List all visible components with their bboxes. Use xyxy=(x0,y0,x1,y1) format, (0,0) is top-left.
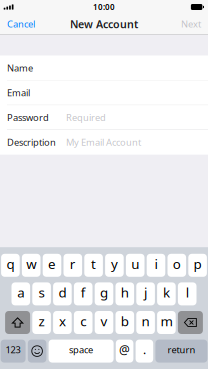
button[interactable]: m xyxy=(157,311,176,334)
button[interactable]: k xyxy=(157,282,176,305)
staticText: q xyxy=(6,255,14,273)
button[interactable]: e xyxy=(43,254,61,277)
button[interactable]: Shift xyxy=(5,311,30,334)
staticText: g xyxy=(100,283,108,301)
button[interactable]: c xyxy=(74,311,92,334)
staticText: Name xyxy=(7,62,33,74)
button[interactable]: s xyxy=(32,282,51,305)
button[interactable]: n xyxy=(136,311,155,334)
staticText: f xyxy=(81,283,86,301)
button[interactable]: r xyxy=(63,254,82,277)
button[interactable]: i xyxy=(147,254,165,277)
button[interactable]: Next xyxy=(177,14,208,34)
staticText: a xyxy=(17,283,24,301)
staticText: t xyxy=(91,255,96,273)
button[interactable]: 123 xyxy=(1,340,26,363)
button[interactable]: w xyxy=(22,254,40,277)
button[interactable]: @ xyxy=(116,340,133,363)
staticText: y xyxy=(111,255,118,273)
button[interactable]: o xyxy=(167,254,186,277)
staticText: l xyxy=(186,283,189,301)
staticText: r xyxy=(70,255,76,273)
staticText: . xyxy=(143,342,146,357)
staticText: 123 xyxy=(6,343,21,356)
button[interactable]: j xyxy=(136,282,155,305)
button[interactable]: q xyxy=(1,254,20,277)
staticText: u xyxy=(131,255,139,273)
button[interactable]: g xyxy=(95,282,113,305)
staticText: d xyxy=(58,283,66,301)
staticText: s xyxy=(39,283,45,301)
staticText: space xyxy=(69,343,93,356)
staticText: x xyxy=(59,312,66,330)
button[interactable]: x xyxy=(53,311,72,334)
button[interactable]: Delete xyxy=(178,311,203,334)
staticText: i xyxy=(154,255,157,273)
staticText: Password xyxy=(7,111,49,124)
button[interactable]: l xyxy=(178,282,196,305)
staticText: h xyxy=(121,283,129,301)
button[interactable]: h xyxy=(115,282,134,305)
staticText: o xyxy=(173,255,181,273)
button[interactable]: f xyxy=(74,282,92,305)
button[interactable]: d xyxy=(53,282,72,305)
staticText: b xyxy=(121,312,129,330)
button[interactable]: z xyxy=(32,311,51,334)
button[interactable]: b xyxy=(115,311,134,334)
button[interactable]: space xyxy=(49,340,114,363)
button[interactable]: Name xyxy=(0,56,208,80)
button[interactable]: Description xyxy=(0,130,208,154)
button[interactable]: . xyxy=(136,340,153,363)
button[interactable]: v xyxy=(95,311,113,334)
button[interactable]: t xyxy=(84,254,103,277)
staticText: New Account xyxy=(70,17,138,31)
staticText: Next xyxy=(181,18,201,30)
staticText: k xyxy=(163,283,170,301)
staticText: j xyxy=(144,283,147,301)
button[interactable]: Cancel xyxy=(0,14,41,34)
staticText: Cancel xyxy=(7,18,35,30)
staticText: Required xyxy=(66,111,106,124)
staticText: @ xyxy=(119,342,130,357)
staticText: n xyxy=(142,312,150,330)
button[interactable]: Password xyxy=(0,105,208,130)
staticText: Description xyxy=(7,136,56,148)
button[interactable]: Email xyxy=(0,80,208,105)
button[interactable]: return xyxy=(155,340,207,363)
staticText: v xyxy=(100,312,107,330)
button[interactable]: a xyxy=(11,282,30,305)
button[interactable]: y xyxy=(105,254,124,277)
button[interactable]: Emoji xyxy=(28,340,46,363)
staticText: 10:00 xyxy=(93,2,115,12)
staticText: e xyxy=(48,255,56,273)
staticText: m xyxy=(160,312,172,330)
staticText: Email xyxy=(7,86,30,99)
staticText: My Email Account xyxy=(66,136,141,148)
staticText: w xyxy=(26,255,36,273)
button[interactable]: p xyxy=(188,254,207,277)
staticText: c xyxy=(80,312,86,330)
staticText: p xyxy=(194,255,202,273)
staticText: return xyxy=(167,343,195,356)
button[interactable]: u xyxy=(126,254,144,277)
staticText: z xyxy=(39,312,45,330)
